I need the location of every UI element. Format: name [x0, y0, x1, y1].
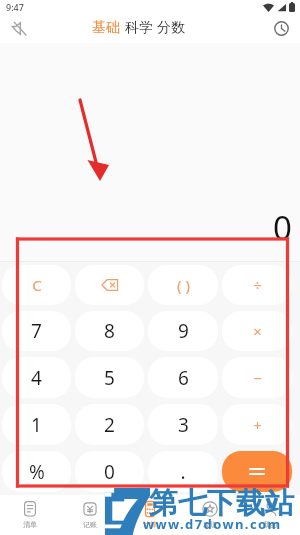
staticText: 1: [31, 412, 42, 438]
button[interactable]: 2: [75, 404, 144, 445]
staticText: 计算: [143, 520, 157, 529]
button[interactable]: ÷: [222, 265, 292, 305]
staticText: .: [180, 459, 186, 485]
staticText: 0: [104, 459, 115, 485]
staticText: +: [253, 415, 262, 435]
staticText: ÷: [253, 275, 262, 295]
staticText: %: [29, 459, 45, 485]
staticText: 9:47: [6, 1, 24, 13]
staticText: 7: [31, 318, 42, 344]
staticText: 5: [104, 365, 115, 391]
staticText: ( ): [177, 275, 190, 295]
button[interactable]: ×: [222, 311, 292, 351]
staticText: 2: [104, 412, 115, 438]
staticText: 分数: [157, 19, 185, 37]
staticText: 4: [31, 365, 42, 391]
staticText: 记账: [83, 520, 97, 529]
button[interactable]: 1: [2, 404, 71, 445]
button[interactable]: 8: [75, 311, 144, 351]
button[interactable]: 0: [75, 451, 144, 492]
staticText: 8: [104, 318, 115, 344]
button[interactable]: 5: [75, 357, 144, 398]
button[interactable]: ( ): [148, 265, 218, 305]
button[interactable]: Equals: [222, 451, 292, 492]
staticText: −: [253, 368, 262, 388]
button[interactable]: 计算: [120, 495, 180, 535]
button[interactable]: −: [222, 357, 292, 398]
button[interactable]: 7: [2, 311, 71, 351]
staticText: 我的: [263, 520, 277, 529]
button[interactable]: 记账: [60, 495, 120, 535]
button[interactable]: 清单: [0, 495, 60, 535]
staticText: C: [32, 275, 42, 295]
button[interactable]: +: [222, 404, 292, 445]
staticText: 科学: [125, 19, 153, 37]
staticText: ×: [253, 321, 262, 341]
staticText: 0: [273, 205, 292, 250]
staticText: 9: [178, 318, 189, 344]
button[interactable]: 发现: [180, 495, 240, 535]
staticText: 清单: [23, 520, 37, 529]
staticText: 基础: [92, 19, 120, 37]
staticText: 3: [178, 412, 189, 438]
button[interactable]: Mute: [6, 15, 32, 41]
button[interactable]: 4: [2, 357, 71, 398]
button[interactable]: 9: [148, 311, 218, 351]
button[interactable]: 分数: [155, 19, 187, 37]
staticText: www.d7down.com: [143, 515, 282, 533]
button[interactable]: 3: [148, 404, 218, 445]
button[interactable]: %: [2, 451, 71, 492]
button[interactable]: Delete: [75, 265, 144, 305]
button[interactable]: 我的: [240, 495, 300, 535]
button[interactable]: C: [2, 265, 71, 305]
button[interactable]: .: [148, 451, 218, 492]
button[interactable]: 6: [148, 357, 218, 398]
staticText: 发现: [203, 520, 217, 529]
staticText: 第七下载站: [149, 485, 294, 522]
button[interactable]: History: [268, 15, 294, 41]
staticText: 6: [178, 365, 189, 391]
button[interactable]: 基础: [90, 19, 122, 37]
button[interactable]: 科学: [123, 19, 155, 37]
